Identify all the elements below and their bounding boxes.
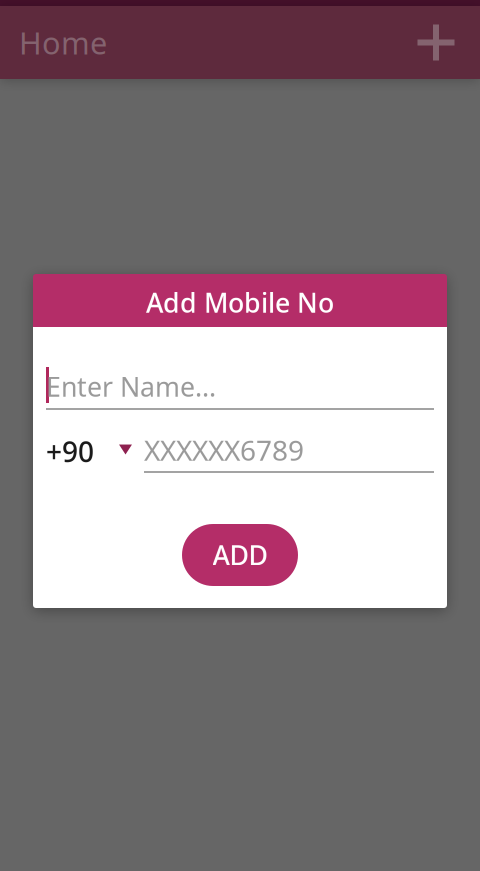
staticText: Add Mobile No — [146, 285, 334, 320]
button[interactable]: Enter Name... — [46, 365, 434, 410]
button[interactable]: Add contact — [408, 14, 464, 70]
staticText: Enter Name... — [46, 369, 216, 404]
button[interactable]: XXXXXX6789 — [144, 430, 434, 473]
staticText: Home — [19, 22, 107, 63]
staticText: ADD — [212, 537, 267, 573]
button[interactable]: ADD — [182, 524, 298, 586]
staticText: XXXXXX6789 — [144, 431, 304, 469]
button[interactable]: Country code +90 — [46, 431, 132, 471]
staticText: +90 — [46, 433, 94, 470]
